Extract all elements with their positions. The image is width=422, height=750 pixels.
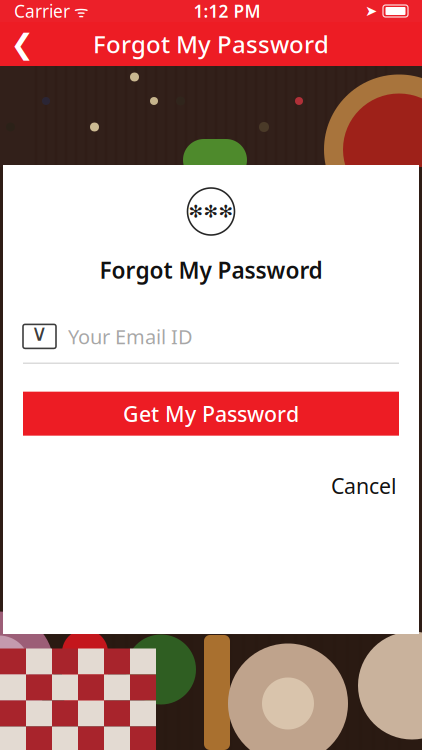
staticText: ∨ [31,320,48,346]
staticText: ✻✻✻ [188,202,233,221]
button[interactable]: Back [0,22,44,66]
staticText: Your Email ID [68,323,193,350]
staticText: ➤ [365,3,377,19]
staticText: Forgot My Password [99,255,322,285]
staticText: Cancel [331,472,397,500]
button[interactable]: Get My Password [23,392,399,436]
staticText: Carrier [14,0,70,22]
staticText: Get My Password [123,399,299,428]
button[interactable]: Cancel [3,462,419,510]
staticText: Forgot My Password [93,28,329,60]
staticText: 1:12 PM [193,0,260,22]
staticText: ❮ [10,28,33,60]
staticText: ᯤ [70,0,89,22]
